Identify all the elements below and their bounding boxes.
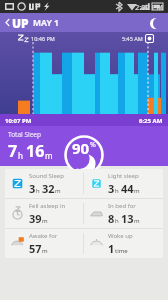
staticText: m — [55, 187, 61, 195]
staticText: 16 — [26, 140, 45, 162]
staticText: h — [36, 187, 40, 195]
button[interactable]: Sound Sleep — [5, 169, 83, 198]
staticText: h — [115, 187, 119, 195]
staticText: 13 — [121, 211, 134, 226]
staticText: MAY 1 — [33, 17, 59, 29]
staticText: Sound Sleep — [29, 172, 64, 180]
staticText: m — [45, 150, 53, 161]
staticText: In bed for — [108, 202, 136, 210]
button[interactable]: Total sleep 7 hours 16 minutes, 90 perce… — [0, 126, 168, 166]
staticText: 32 — [42, 181, 55, 196]
staticText: 2:02 PM — [135, 2, 164, 12]
staticText: 3 — [108, 181, 115, 196]
staticText: m — [134, 187, 140, 195]
staticText: 39 — [29, 211, 42, 226]
button[interactable]: Back to UP, May 1 — [3, 13, 61, 32]
staticText: h — [115, 217, 119, 225]
staticText: 57 — [29, 241, 42, 256]
staticText: 8 — [108, 211, 115, 226]
staticText: Total Sleep — [8, 130, 42, 139]
staticText: 5:45 AM — [122, 35, 143, 42]
staticText: 90 — [72, 138, 90, 158]
staticText: UP — [12, 15, 29, 30]
staticText: 1 — [108, 241, 115, 256]
staticText: m — [42, 217, 48, 225]
staticText: 10:46 PM — [31, 35, 55, 42]
staticText: time — [115, 247, 128, 255]
staticText: 10:07 PM — [5, 117, 32, 125]
staticText: m — [134, 217, 140, 225]
staticText: m — [42, 247, 48, 255]
staticText: 44 — [121, 181, 134, 196]
staticText: Light sleep — [108, 172, 139, 180]
staticText: % — [90, 140, 96, 150]
staticText: Awake for — [29, 232, 58, 240]
button[interactable]: Sleep mode — [147, 15, 163, 31]
staticText: Fell asleep in — [29, 202, 66, 210]
staticText: 3 — [29, 181, 36, 196]
staticText: h — [18, 150, 23, 161]
staticText: 7 — [8, 140, 18, 162]
button[interactable]: Woke up — [84, 229, 163, 258]
button[interactable]: Awake for — [5, 229, 83, 258]
button[interactable]: Light sleep — [84, 169, 163, 198]
staticText: 6:25 AM — [139, 117, 163, 125]
staticText: Woke up — [108, 232, 133, 240]
button[interactable]: Sleep graph — [0, 32, 168, 126]
button[interactable]: In bed for — [84, 199, 163, 228]
button[interactable]: Fell asleep in — [5, 199, 83, 228]
